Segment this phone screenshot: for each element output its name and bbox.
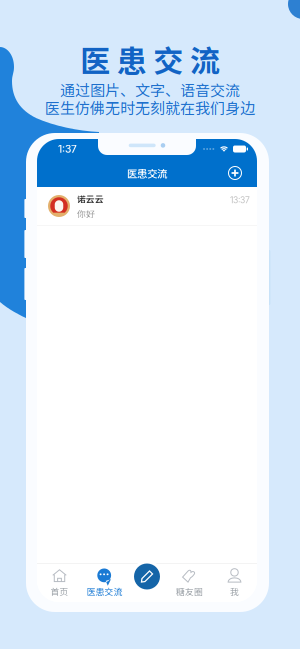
staticText: 你好 xyxy=(77,207,95,220)
button[interactable]: 我 xyxy=(212,564,257,602)
staticText: 我 xyxy=(230,585,239,597)
staticText: 1:37 xyxy=(58,143,77,155)
staticText: 诺云云 xyxy=(77,192,104,205)
button[interactable]: New chat xyxy=(224,161,246,185)
staticText: 糖友圈 xyxy=(176,585,203,597)
button[interactable]: 医患交流 xyxy=(82,564,127,602)
staticText: 13:37 xyxy=(230,195,250,205)
staticText: 医患交流 xyxy=(86,585,122,597)
button[interactable]: 首页 xyxy=(37,564,82,602)
staticText: 通过图片、文字、语音交流 xyxy=(60,79,240,100)
button[interactable]: 糖友圈 xyxy=(167,564,212,602)
staticText: 医生仿佛无时无刻就在我们身边 xyxy=(45,97,255,118)
staticText: 医患交流 xyxy=(80,37,220,81)
button[interactable]: Compose xyxy=(131,560,163,592)
staticText: 医患交流 xyxy=(127,165,167,181)
staticText: 首页 xyxy=(50,585,68,597)
button[interactable]: 诺云云 xyxy=(37,187,257,225)
